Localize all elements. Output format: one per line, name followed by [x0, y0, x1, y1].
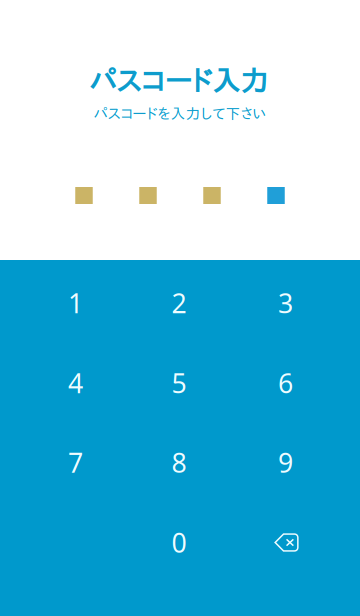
staticText: 0 — [171, 525, 186, 560]
staticText: パスコード入力 — [89, 66, 268, 94]
button[interactable]: 3 — [233, 263, 337, 343]
staticText: 5 — [171, 365, 186, 401]
staticText: 1 — [68, 285, 83, 321]
staticText: パスコードを入力して下さい — [93, 106, 266, 121]
button[interactable]: 5 — [127, 343, 231, 423]
button[interactable]: 2 — [127, 263, 231, 343]
staticText: 2 — [171, 285, 186, 321]
staticText: 7 — [68, 445, 83, 480]
button[interactable]: 7 — [23, 422, 127, 502]
button[interactable]: 4 — [23, 343, 127, 423]
button[interactable]: 8 — [127, 422, 231, 502]
staticText: 4 — [68, 365, 83, 401]
staticText: 9 — [278, 445, 293, 480]
button[interactable]: 9 — [233, 422, 337, 502]
staticText: 8 — [171, 445, 186, 480]
button[interactable]: 1 — [23, 263, 127, 343]
staticText: 6 — [278, 365, 293, 401]
button[interactable]: 0 — [127, 502, 231, 582]
button[interactable]: 6 — [233, 343, 337, 423]
button[interactable]: Delete — [234, 502, 338, 582]
staticText: 3 — [278, 285, 293, 321]
